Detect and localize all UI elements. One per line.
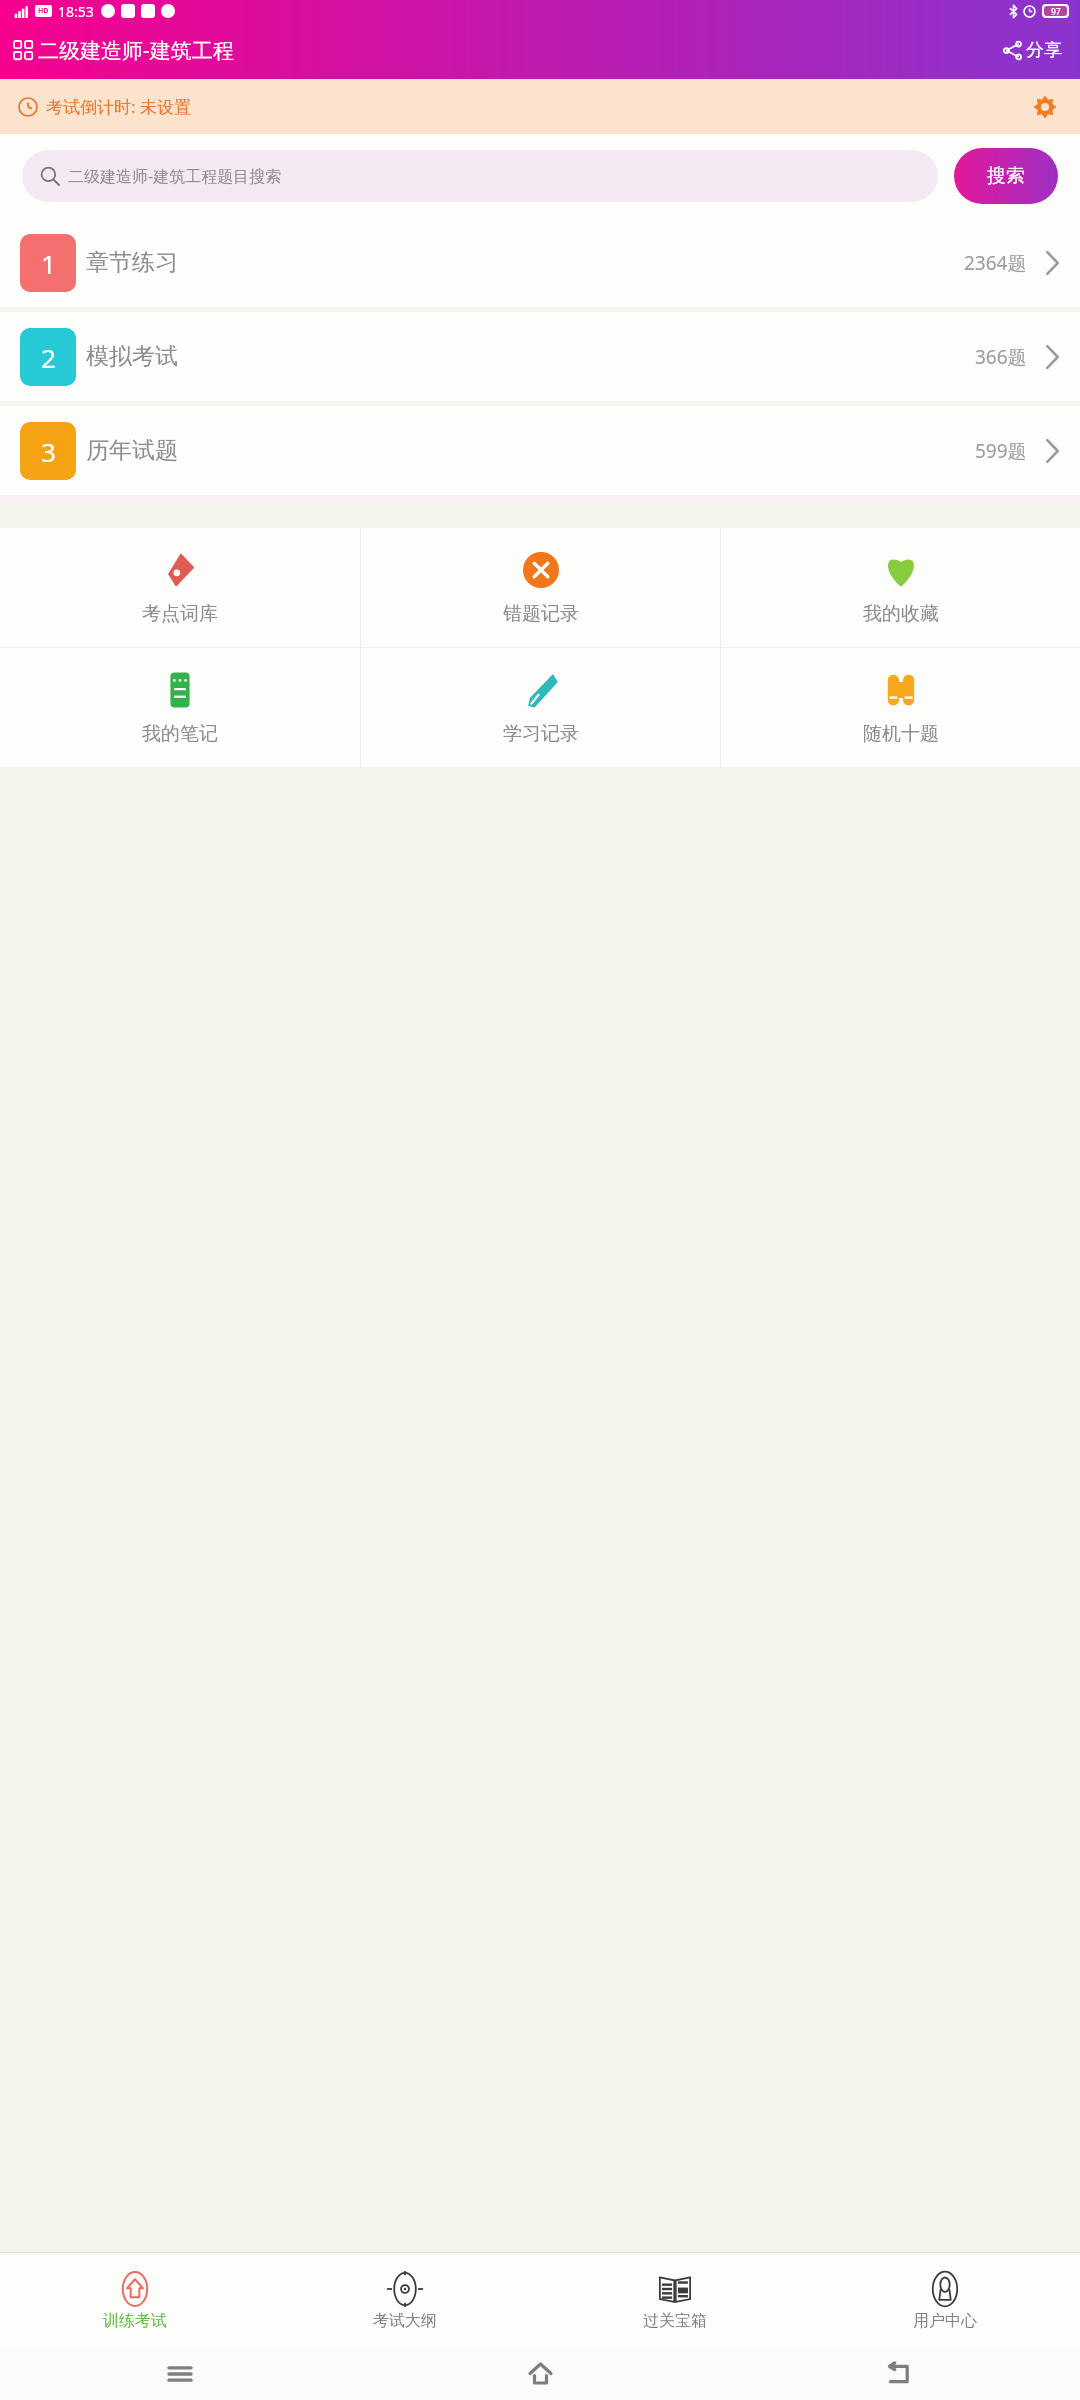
staticText: 历年试题 — [86, 436, 178, 465]
staticText: 用户中心 — [913, 2311, 977, 2331]
button[interactable]: 分享 — [999, 33, 1066, 68]
button[interactable]: 训练考试 — [0, 2253, 270, 2348]
staticText: 97 — [1051, 6, 1061, 16]
button[interactable]: 设置 — [1028, 90, 1062, 124]
staticText: 模拟考试 — [86, 342, 178, 371]
staticText: 二级建造师-建筑工程题目搜索 — [68, 165, 282, 187]
button[interactable]: 搜索 — [954, 148, 1058, 204]
staticText: 二级建造师-建筑工程 — [38, 36, 234, 65]
button[interactable]: 2 — [0, 312, 1080, 401]
button[interactable]: 我的收藏 — [721, 528, 1080, 647]
staticText: 2 — [41, 340, 56, 375]
staticText: 过关宝箱 — [643, 2311, 707, 2331]
staticText: 章节练习 — [86, 248, 178, 277]
button[interactable]: 用户中心 — [810, 2253, 1080, 2348]
staticText: 2364题 — [964, 250, 1027, 276]
button[interactable]: 过关宝箱 — [540, 2253, 810, 2348]
staticText: 我的笔记 — [142, 722, 218, 746]
button[interactable]: 我的笔记 — [0, 648, 360, 767]
staticText: 考试大纲 — [373, 2311, 437, 2331]
staticText: 搜索 — [987, 164, 1025, 188]
button[interactable]: 考点词库 — [0, 528, 360, 647]
staticText: 1 — [41, 246, 56, 281]
button[interactable]: 1 — [0, 218, 1080, 307]
button[interactable]: 错题记录 — [361, 528, 720, 647]
staticText: 训练考试 — [103, 2311, 167, 2331]
button[interactable]: Home — [360, 2348, 720, 2400]
button[interactable]: 学习记录 — [361, 648, 720, 767]
staticText: 我的收藏 — [863, 602, 939, 626]
button[interactable]: Recents — [0, 2348, 360, 2400]
staticText: 学习记录 — [503, 722, 579, 746]
staticText: 599题 — [975, 438, 1027, 464]
staticText: 分享 — [1026, 39, 1062, 62]
button[interactable]: 二级建造师-建筑工程题目搜索 — [22, 150, 938, 202]
button[interactable]: 考试大纲 — [270, 2253, 540, 2348]
staticText: 3 — [41, 434, 56, 469]
staticText: 考试倒计时: 未设置 — [46, 95, 191, 118]
button[interactable]: 考试倒计时: 未设置 — [0, 79, 1080, 134]
staticText: HD — [38, 6, 49, 16]
staticText: 366题 — [975, 344, 1027, 370]
button[interactable]: 3 — [0, 406, 1080, 495]
staticText: 随机十题 — [863, 722, 939, 746]
button[interactable]: Back — [720, 2348, 1080, 2400]
staticText: 错题记录 — [503, 602, 579, 626]
staticText: 考点词库 — [142, 602, 218, 626]
staticText: 18:53 — [58, 2, 94, 21]
button[interactable]: 随机十题 — [721, 648, 1080, 767]
